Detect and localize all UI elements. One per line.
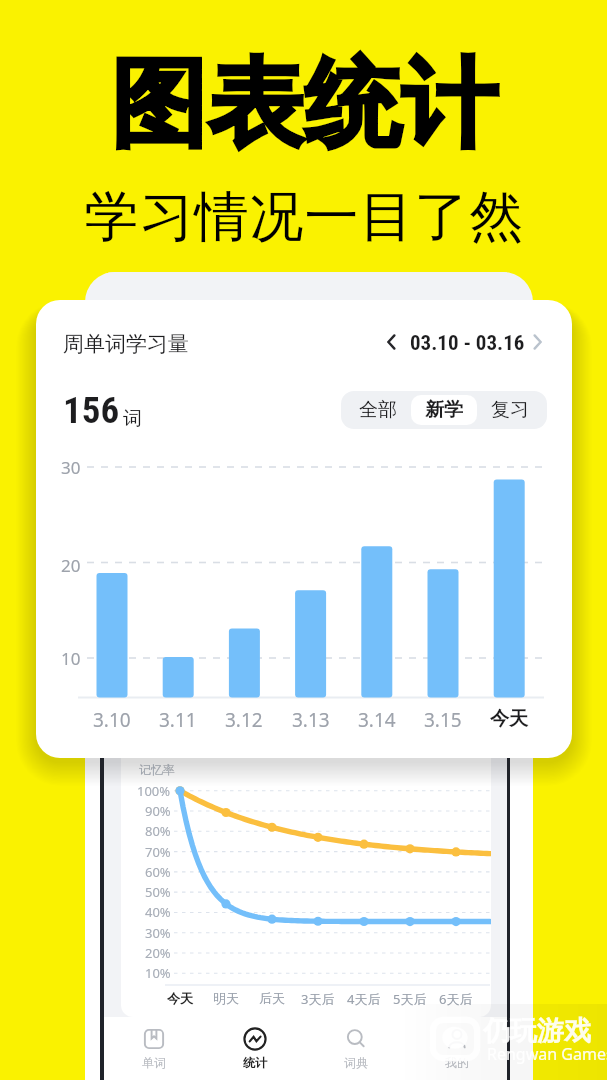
staticText: 70% xyxy=(145,843,171,861)
staticText: 我的 xyxy=(445,1055,469,1070)
staticText: 词 xyxy=(123,407,142,431)
staticText: 5天后 xyxy=(393,990,427,1008)
staticText: 50% xyxy=(145,883,171,901)
staticText: 80% xyxy=(145,822,171,840)
staticText: 6天后 xyxy=(439,990,473,1008)
staticText: 20% xyxy=(145,944,171,962)
staticText: 100% xyxy=(137,782,171,800)
button[interactable]: Previous week xyxy=(380,330,404,354)
button[interactable]: 统计 xyxy=(204,1017,305,1080)
button[interactable]: Next week xyxy=(525,330,549,354)
staticText: 学习情况一目了然 xyxy=(84,183,524,251)
staticText: 4天后 xyxy=(347,990,381,1008)
staticText: Rengwan Games xyxy=(487,1043,607,1065)
staticText: 今天 xyxy=(490,707,528,731)
button[interactable]: 我的 xyxy=(406,1017,507,1080)
staticText: 30% xyxy=(145,924,171,942)
staticText: 统计 xyxy=(243,1055,267,1070)
staticText: 60% xyxy=(145,863,171,881)
staticText: 全部 xyxy=(359,398,397,422)
staticText: 20 xyxy=(61,554,81,577)
staticText: 记忆率 xyxy=(139,762,175,777)
staticText: 单词 xyxy=(142,1055,166,1070)
staticText: 156 xyxy=(63,389,120,432)
staticText: 3.14 xyxy=(358,707,396,733)
staticText: 仍玩游戏 xyxy=(483,1014,591,1048)
staticText: 3.11 xyxy=(159,707,197,733)
staticText: 后天 xyxy=(259,990,285,1006)
staticText: 10 xyxy=(61,647,81,670)
staticText: 10% xyxy=(145,964,171,982)
staticText: 90% xyxy=(145,802,171,820)
staticText: 3.13 xyxy=(292,707,330,733)
staticText: 3.12 xyxy=(225,707,263,733)
staticText: 复习 xyxy=(491,398,529,422)
staticText: 图表统计 xyxy=(110,45,498,166)
staticText: 3.15 xyxy=(424,707,462,733)
staticText: 40% xyxy=(145,903,171,921)
button[interactable]: 全部 xyxy=(345,395,411,425)
staticText: 周单词学习量 xyxy=(63,331,189,357)
button[interactable]: 词典 xyxy=(305,1017,406,1080)
staticText: 新学 xyxy=(425,398,463,422)
staticText: 30 xyxy=(61,456,81,479)
staticText: 明天 xyxy=(213,990,239,1006)
staticText: 3.10 xyxy=(93,707,131,733)
button[interactable]: 单词 xyxy=(104,1017,204,1080)
button[interactable]: 新学 xyxy=(411,395,477,425)
staticText: 03.10 - 03.16 xyxy=(410,331,525,356)
staticText: 今天 xyxy=(167,990,193,1006)
staticText: 3天后 xyxy=(301,990,335,1008)
button[interactable]: 复习 xyxy=(477,395,543,425)
staticText: 词典 xyxy=(344,1055,368,1070)
